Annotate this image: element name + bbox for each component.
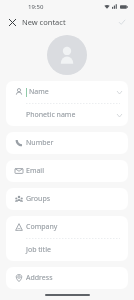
- button[interactable]: Close: [5, 15, 19, 29]
- button[interactable]: Company: [6, 216, 128, 238]
- button[interactable]: Phonetic name: [6, 104, 128, 126]
- staticText: Email: [26, 166, 44, 176]
- staticText: Job title: [26, 245, 51, 255]
- staticText: New contact: [22, 17, 66, 27]
- button[interactable]: Email: [6, 160, 128, 182]
- button[interactable]: Add photo: [47, 35, 87, 75]
- staticText: Address: [26, 273, 53, 283]
- staticText: Company: [26, 222, 58, 232]
- staticText: Number: [26, 138, 54, 148]
- button[interactable]: Name: [6, 81, 128, 103]
- staticText: 19:50: [28, 3, 44, 11]
- button[interactable]: Number: [6, 132, 128, 154]
- staticText: Groups: [26, 194, 51, 204]
- button[interactable]: Address: [6, 267, 128, 289]
- staticText: Phonetic name: [26, 110, 76, 120]
- button[interactable]: Groups: [6, 188, 128, 210]
- staticText: Name: [29, 87, 49, 97]
- button[interactable]: Job title: [6, 239, 128, 261]
- button[interactable]: Save: [115, 15, 129, 29]
